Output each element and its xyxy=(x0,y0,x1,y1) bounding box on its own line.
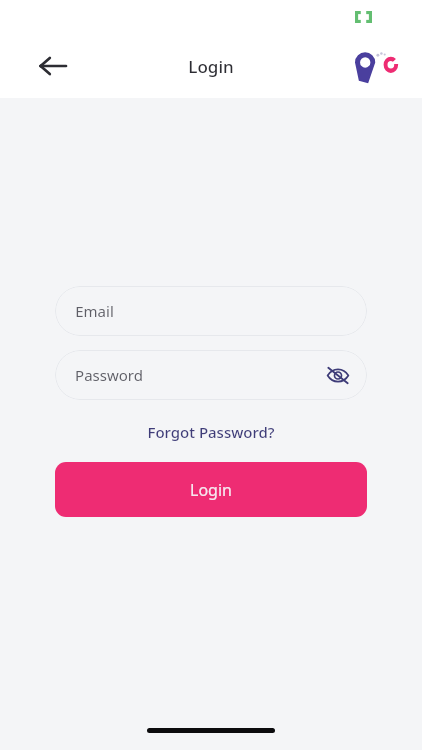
staticText: Login xyxy=(188,55,234,78)
staticText: Login xyxy=(190,479,232,501)
button[interactable]: Email xyxy=(55,286,367,336)
button[interactable]: Forgot Password? xyxy=(139,418,283,446)
staticText: Forgot Password? xyxy=(147,422,275,442)
button[interactable]: Password xyxy=(55,350,367,400)
staticText: Email xyxy=(75,301,114,321)
button[interactable]: Back xyxy=(30,44,74,88)
button[interactable]: Show password xyxy=(320,357,356,393)
button[interactable]: App logo xyxy=(352,41,402,91)
staticText: Password xyxy=(75,365,143,385)
button[interactable]: Login xyxy=(55,462,367,517)
